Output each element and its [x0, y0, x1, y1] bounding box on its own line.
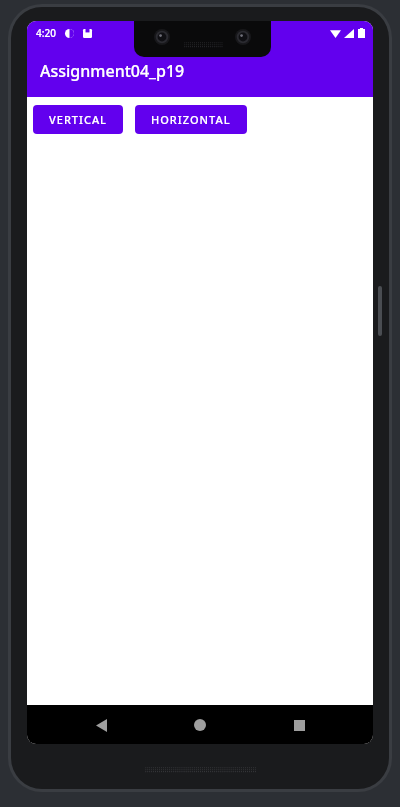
button[interactable]: Recent apps — [282, 708, 316, 742]
staticText: HORIZONTAL — [151, 112, 231, 127]
staticText: Assignment04_p19 — [40, 60, 185, 82]
button[interactable]: HORIZONTAL — [135, 105, 247, 134]
button[interactable]: Home — [183, 708, 217, 742]
staticText: VERTICAL — [49, 112, 107, 127]
button[interactable]: Back — [84, 708, 118, 742]
staticText: 4:20 — [36, 26, 56, 40]
button[interactable]: VERTICAL — [33, 105, 123, 134]
